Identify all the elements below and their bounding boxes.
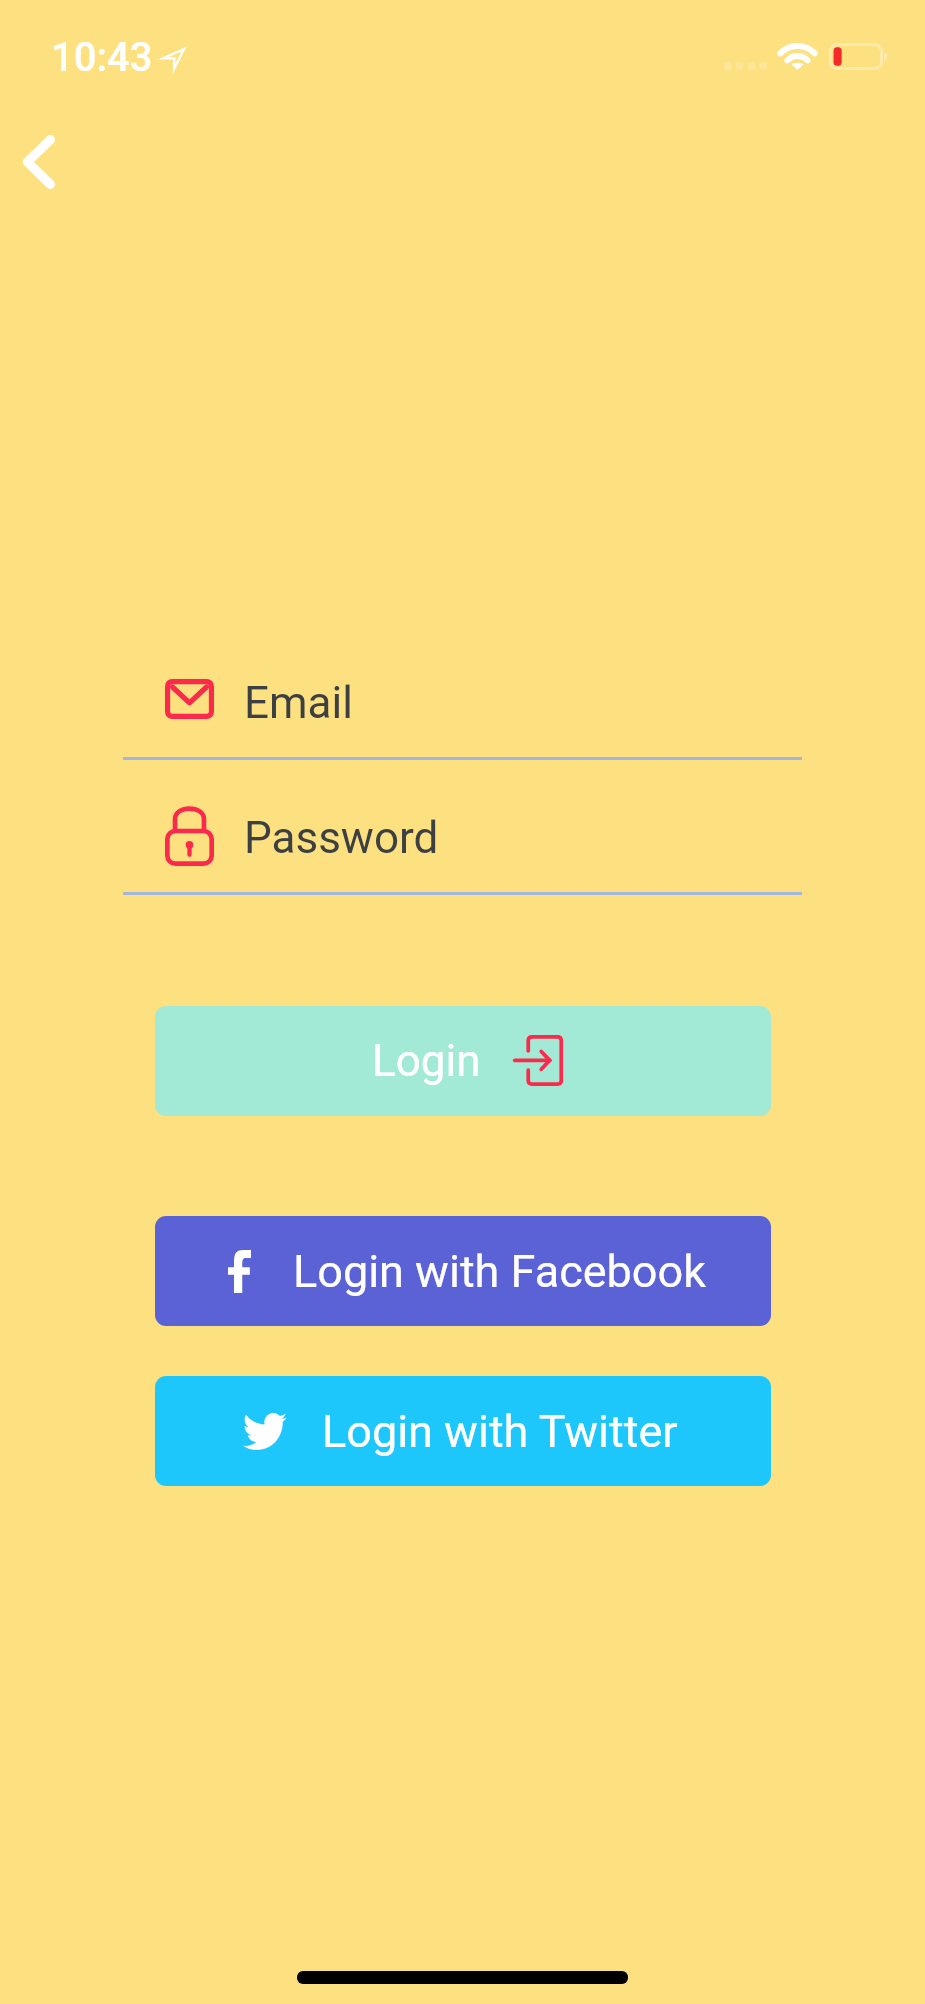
staticText: 10:43 — [51, 34, 153, 81]
staticText: Email — [244, 677, 353, 729]
button[interactable]: Login with Twitter — [155, 1376, 771, 1486]
button[interactable]: Login — [155, 1006, 771, 1116]
button[interactable]: Password — [123, 780, 802, 895]
staticText: Login with Facebook — [293, 1245, 706, 1298]
button[interactable]: Login with Facebook — [155, 1216, 771, 1326]
button[interactable]: Back — [0, 115, 88, 209]
staticText: Password — [244, 812, 439, 864]
staticText: Login with Twitter — [322, 1405, 678, 1458]
button[interactable]: Email — [123, 653, 802, 760]
staticText: Login — [372, 1035, 481, 1087]
